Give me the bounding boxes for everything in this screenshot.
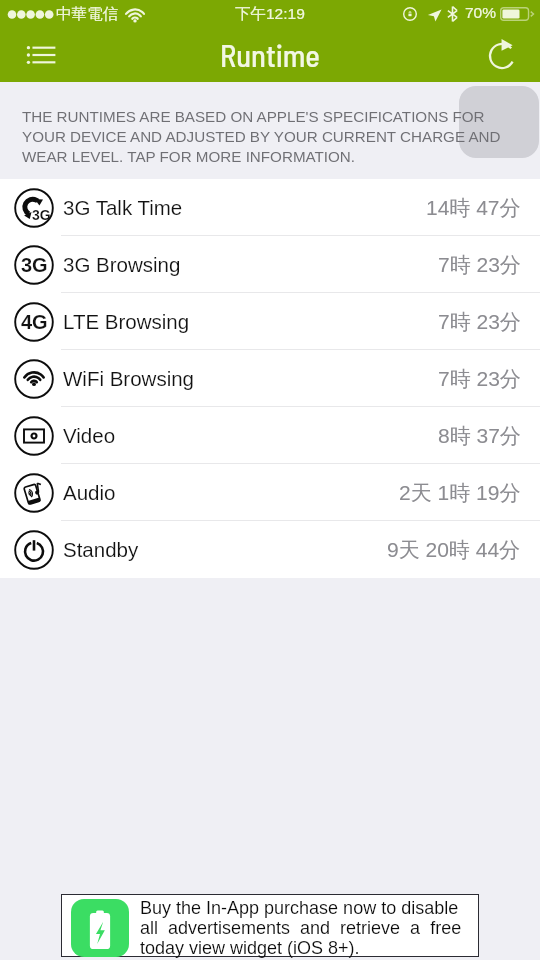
staticText: WEAR LEVEL. TAP FOR MORE INFORMATION.: [22, 148, 356, 165]
staticText: Audio: [63, 481, 116, 504]
button[interactable]: Audio: [0, 464, 540, 521]
button[interactable]: 3G: [0, 236, 540, 293]
staticText: 8時 37分: [438, 423, 521, 449]
button[interactable]: WiFi Browsing: [0, 350, 540, 407]
staticText: THE RUNTIMES ARE BASED ON APPLE'S SPECIF…: [22, 108, 485, 125]
staticText: Standby: [63, 538, 139, 561]
staticText: 中華電信: [56, 4, 118, 24]
staticText: 4G: [21, 311, 48, 333]
staticText: Buy the In-App purchase now to disable: [140, 898, 459, 918]
staticText: 14時 47分: [426, 195, 521, 221]
button[interactable]: 4G: [0, 293, 540, 350]
staticText: Video: [63, 424, 116, 447]
button[interactable]: Menu: [6, 28, 76, 82]
staticText: all advertisements and retrieve a free: [140, 918, 462, 938]
staticText: 2天 1時 19分: [399, 480, 521, 506]
staticText: 70%: [465, 4, 497, 21]
button[interactable]: Video: [0, 407, 540, 464]
staticText: 7時 23分: [438, 252, 521, 278]
button[interactable]: Refresh: [470, 28, 540, 82]
button[interactable]: Standby: [0, 521, 540, 578]
staticText: 7時 23分: [438, 366, 521, 392]
button[interactable]: THE RUNTIMES ARE BASED ON APPLE'S SPECIF…: [0, 82, 540, 179]
staticText: 9天 20時 44分: [387, 537, 521, 563]
staticText: 3G Browsing: [63, 253, 181, 276]
staticText: Runtime: [220, 36, 320, 73]
button[interactable]: Buy the In-App purchase now to disable: [61, 894, 479, 957]
staticText: 3G: [32, 207, 51, 223]
staticText: YOUR DEVICE AND ADJUSTED BY YOUR CURRENT…: [22, 128, 501, 145]
staticText: today view widget (iOS 8+).: [140, 938, 360, 958]
staticText: 7時 23分: [438, 309, 521, 335]
staticText: 下午12:19: [235, 4, 305, 24]
staticText: 3G: [21, 254, 48, 276]
staticText: WiFi Browsing: [63, 367, 194, 390]
staticText: 3G Talk Time: [63, 196, 183, 219]
button[interactable]: 3G: [0, 179, 540, 236]
staticText: LTE Browsing: [63, 310, 190, 333]
